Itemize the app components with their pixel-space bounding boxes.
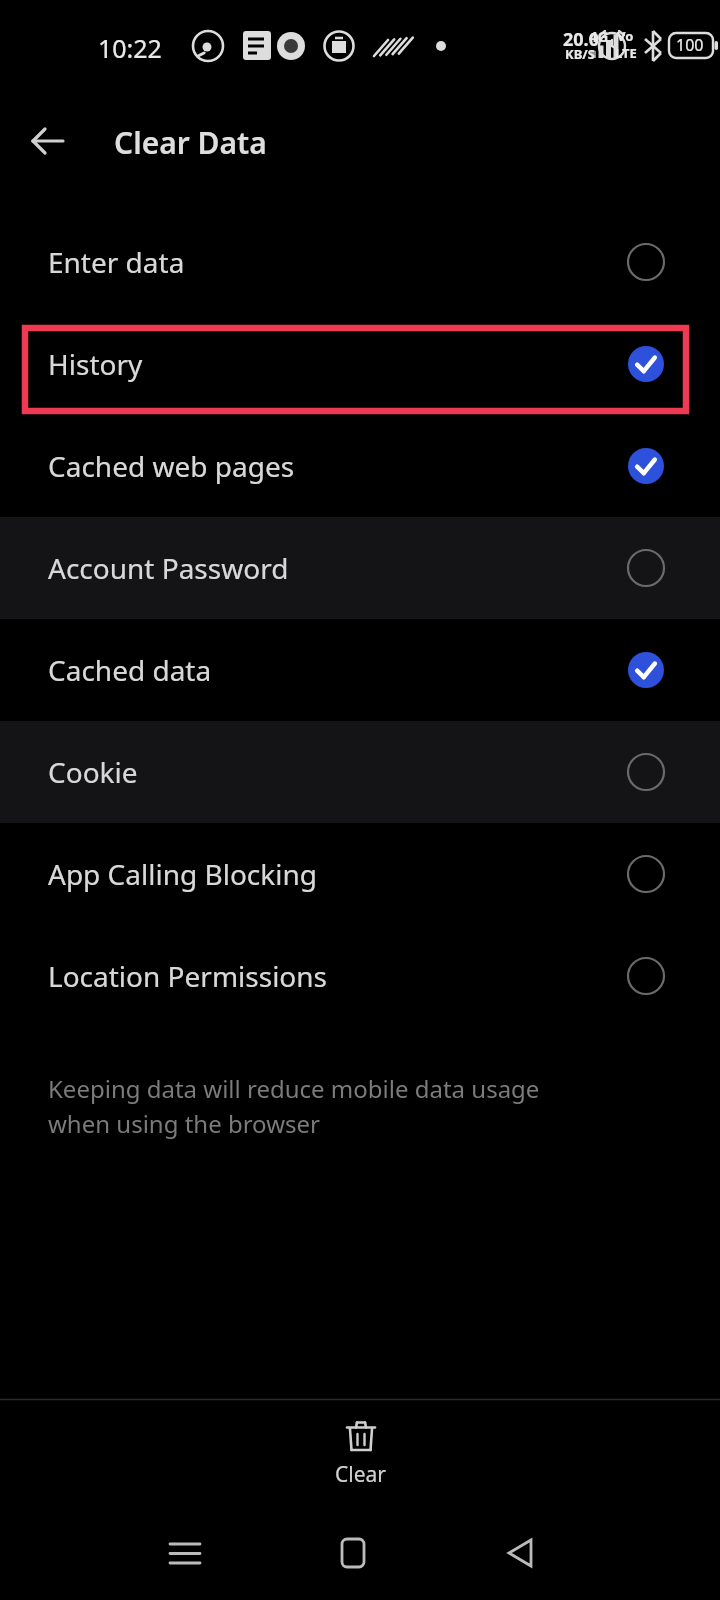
staticText: 4G (589, 26, 609, 46)
staticText: 20.0 (563, 27, 599, 52)
button[interactable]: Back (481, 1513, 561, 1593)
button[interactable]: Cookie (0, 721, 720, 823)
staticText: History (48, 345, 627, 383)
staticText: Keeping data will reduce mobile data usa… (48, 1072, 593, 1140)
staticText: Cookie (48, 753, 627, 791)
button[interactable]: Clear (309, 1415, 412, 1493)
staticText: KB/S (565, 45, 595, 63)
button[interactable]: Cached data (0, 619, 720, 721)
button[interactable]: History (0, 313, 720, 415)
staticText: Cached data (48, 651, 627, 689)
staticText: Enter data (48, 243, 627, 281)
staticText: Clear Data (114, 122, 267, 163)
button[interactable]: Recent apps (145, 1513, 225, 1593)
staticText: Cached web pages (48, 447, 627, 485)
button[interactable]: Cached web pages (0, 415, 720, 517)
staticText: Location Permissions (48, 957, 627, 995)
button[interactable]: Location Permissions (0, 925, 720, 1027)
staticText: Clear (335, 1460, 386, 1489)
staticText: Account Password (48, 549, 627, 587)
staticText: App Calling Blocking (48, 855, 627, 893)
staticText: LTE (615, 44, 637, 62)
button[interactable]: Home (313, 1513, 393, 1593)
button[interactable]: Enter data (0, 211, 720, 313)
staticText: Vo (617, 27, 634, 45)
button[interactable]: Account Password (0, 517, 720, 619)
staticText: 100 (676, 34, 704, 56)
staticText: 10:22 (98, 31, 162, 65)
button[interactable]: Back (24, 117, 72, 165)
button[interactable]: App Calling Blocking (0, 823, 720, 925)
